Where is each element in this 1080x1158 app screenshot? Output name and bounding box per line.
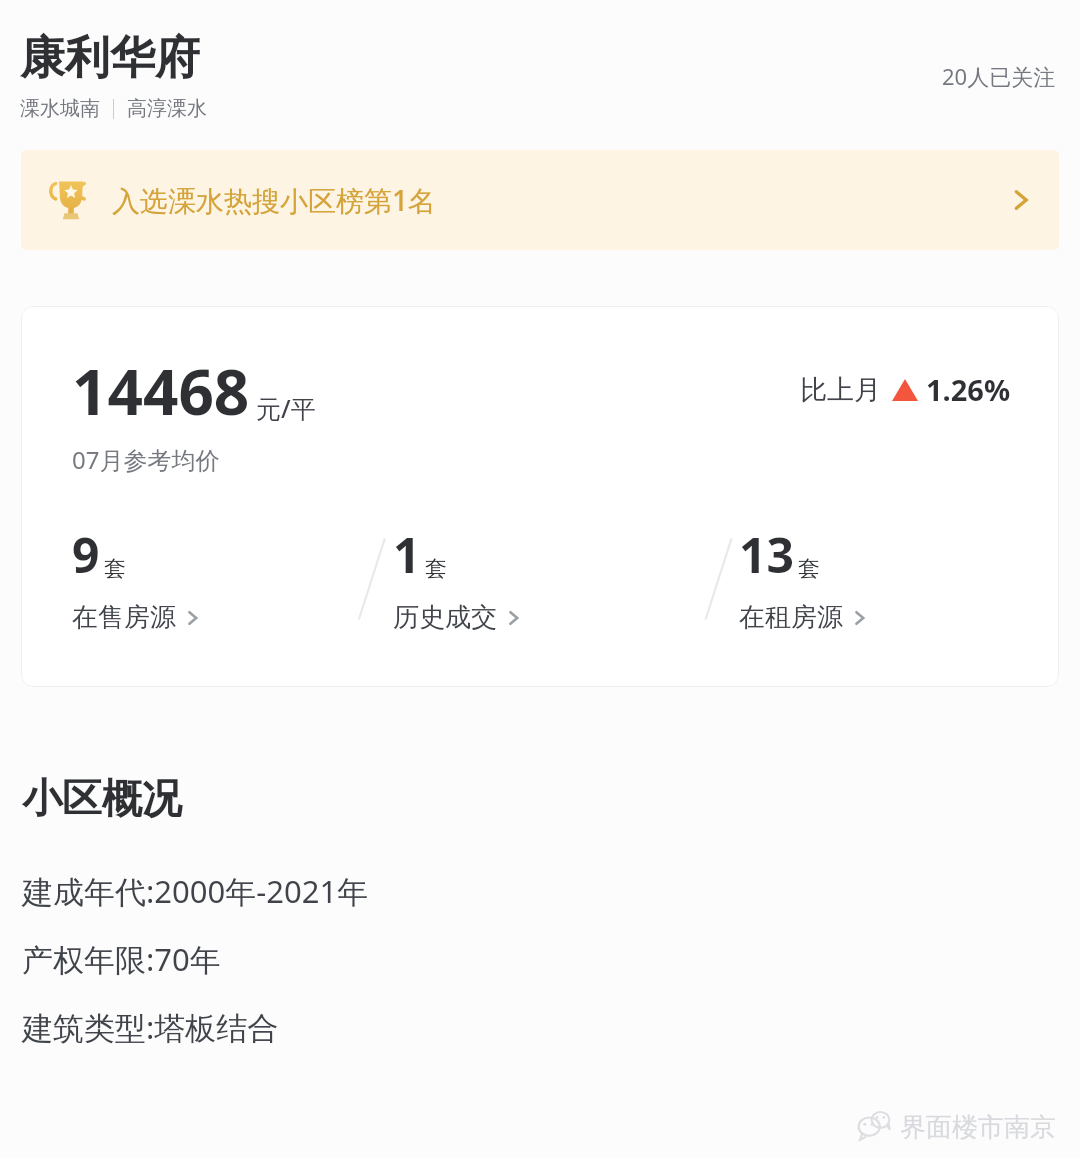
button[interactable]: 奖杯: [21, 150, 1059, 250]
staticText: 高淳溧水: [127, 96, 207, 121]
staticText: 建成年代:2000年-2021年: [22, 870, 369, 912]
button[interactable]: 9: [21, 518, 367, 663]
staticText: 1.26%: [926, 370, 1011, 409]
staticText: 小区概况: [22, 773, 182, 823]
staticText: 溧水城南: [20, 96, 100, 121]
staticText: 13: [739, 522, 794, 587]
staticText: 9: [72, 522, 100, 587]
staticText: 14468: [72, 349, 250, 433]
staticText: 20人已关注: [942, 61, 1056, 91]
staticText: 建筑类型:塔板结合: [22, 1006, 279, 1048]
staticText: 界面楼市南京: [900, 1111, 1056, 1144]
staticText: 元/平: [256, 391, 316, 425]
staticText: 07月参考均价: [72, 443, 220, 476]
staticText: 历史成交: [393, 601, 497, 634]
staticText: 套: [798, 555, 820, 583]
staticText: 入选溧水热搜小区榜第1名: [112, 181, 437, 219]
staticText: 康利华府: [20, 30, 200, 87]
button[interactable]: 1: [367, 518, 713, 663]
staticText: 在租房源: [739, 601, 843, 634]
staticText: 在售房源: [72, 601, 176, 634]
other: 奖杯: [48, 177, 94, 223]
staticText: 套: [425, 555, 447, 583]
staticText: 1: [393, 522, 421, 587]
button[interactable]: 13: [713, 518, 1059, 663]
staticText: 比上月: [800, 373, 881, 407]
button[interactable]: 20人已关注: [938, 57, 1060, 95]
staticText: 产权年限:70年: [22, 938, 221, 980]
staticText: 套: [104, 555, 126, 583]
